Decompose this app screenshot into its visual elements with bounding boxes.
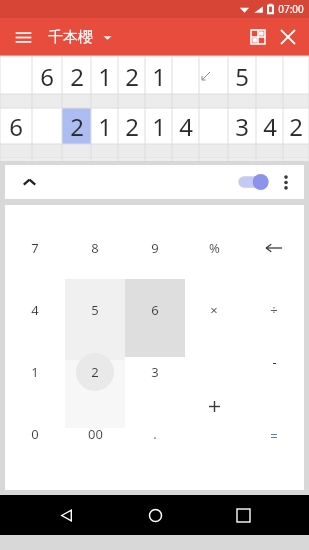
staticText: 07:00 (278, 2, 304, 16)
staticText: 3 (235, 110, 249, 143)
staticText: 9 (151, 239, 159, 257)
staticText: 1 (98, 60, 112, 93)
button[interactable]: 2 (62, 58, 91, 94)
button[interactable]: 4 (172, 108, 199, 144)
staticText: ÷ (270, 301, 278, 319)
button[interactable]: × (184, 279, 244, 341)
button[interactable]: 6 (125, 279, 185, 341)
button[interactable]: = (244, 405, 304, 467)
button[interactable]: 1 (91, 58, 118, 94)
staticText: 6 (40, 60, 54, 93)
staticText: 0 (31, 425, 39, 443)
button[interactable]: 3 (125, 341, 185, 403)
staticText: 2 (289, 110, 303, 143)
staticText: 2 (125, 110, 139, 143)
staticText: 00 (88, 425, 103, 443)
staticText: 2 (125, 60, 139, 93)
button[interactable]: Recents (221, 495, 265, 535)
button[interactable]: 0 (5, 403, 65, 465)
button[interactable]: 4 (5, 279, 65, 341)
button[interactable]: 2 (65, 341, 125, 403)
staticText: = (270, 427, 278, 445)
staticText: × (210, 301, 218, 319)
button[interactable]: 6 (32, 58, 62, 94)
staticText: 4 (31, 301, 39, 319)
staticText: 2 (91, 363, 99, 381)
staticText: 6 (151, 301, 159, 319)
staticText: 7 (31, 239, 39, 257)
button[interactable]: 1 (91, 108, 118, 144)
button[interactable]: 4 (256, 108, 283, 144)
button[interactable]: 8 (65, 217, 125, 279)
staticText: 5 (235, 60, 249, 93)
staticText: . (153, 425, 157, 443)
button[interactable]: - (244, 331, 304, 393)
staticText: - (272, 353, 277, 371)
button[interactable]: Plus (184, 375, 244, 437)
button[interactable]: 6 (0, 108, 32, 144)
button[interactable]: 1 (5, 341, 65, 403)
staticText: % (209, 239, 220, 257)
staticText: 4 (179, 110, 193, 143)
button[interactable]: 2 (118, 108, 145, 144)
staticText: 1 (152, 110, 166, 143)
button[interactable]: Close (273, 22, 303, 52)
staticText: 2 (70, 60, 84, 93)
button[interactable]: 5 (228, 58, 256, 94)
button[interactable]: ÷ (244, 279, 304, 341)
staticText: 2 (70, 110, 84, 143)
staticText: 1 (31, 363, 39, 381)
staticText: 3 (151, 363, 159, 381)
button[interactable]: Toggle (233, 168, 273, 196)
button[interactable]: 00 (65, 403, 125, 465)
button[interactable]: 千本櫻 (48, 28, 112, 47)
button[interactable]: Sheets (243, 22, 273, 52)
button[interactable]: 9 (125, 217, 185, 279)
button[interactable]: Back (44, 495, 88, 535)
button[interactable]: 3 (228, 108, 256, 144)
staticText: 4 (263, 110, 277, 143)
button[interactable]: Collapse (15, 168, 43, 196)
button[interactable]: 2 (62, 108, 91, 144)
button[interactable]: Home (133, 495, 177, 535)
button[interactable]: Backspace (244, 217, 304, 279)
button[interactable]: 7 (5, 217, 65, 279)
button[interactable]: 1 (145, 58, 172, 94)
button[interactable]: 1 (145, 108, 172, 144)
staticText: 千本櫻 (48, 28, 93, 47)
staticText: 1 (98, 110, 112, 143)
button[interactable]: % (184, 217, 244, 279)
button[interactable]: 2 (118, 58, 145, 94)
button[interactable]: 2 (283, 108, 309, 144)
button[interactable]: More options (273, 169, 299, 195)
staticText: 8 (91, 239, 99, 257)
button[interactable]: Menu (8, 22, 38, 52)
button[interactable]: 5 (65, 279, 125, 341)
staticText: 1 (152, 60, 166, 93)
staticText: 5 (91, 301, 99, 319)
button[interactable] (244, 217, 304, 279)
staticText: 6 (9, 110, 23, 143)
